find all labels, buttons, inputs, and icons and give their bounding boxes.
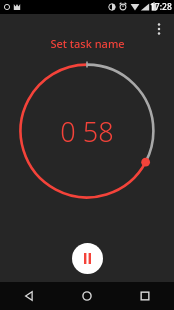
button[interactable]: Set task name [44,34,131,53]
staticText: Set task name [50,36,125,51]
staticText: 17:28 [150,1,172,13]
button[interactable]: Recents [116,282,174,310]
button[interactable]: Back [0,282,58,310]
button[interactable]: Home [58,282,116,310]
staticText: 0 58 [60,113,114,150]
button[interactable]: More options [144,14,174,44]
button[interactable]: Pause [72,243,103,274]
